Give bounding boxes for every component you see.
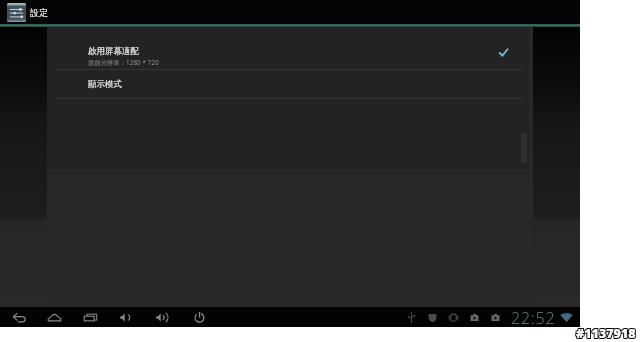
- staticText: 設定: [30, 7, 48, 18]
- staticText: #1137918: [576, 326, 636, 342]
- button[interactable]: 啟用屏幕適配: [47, 27, 529, 69]
- button[interactable]: Settings: [7, 3, 26, 22]
- staticText: #1137918: [576, 325, 636, 342]
- staticText: #1137918: [577, 325, 637, 342]
- button[interactable]: Volume down: [109, 307, 143, 327]
- staticText: 22:52: [511, 307, 556, 327]
- staticText: #1137918: [575, 326, 635, 342]
- button[interactable]: Back: [2, 307, 36, 327]
- staticText: 當前分辨率：1280 * 720: [88, 58, 159, 66]
- button[interactable]: Home: [37, 307, 71, 327]
- staticText: #1137918: [575, 324, 635, 341]
- staticText: 顯示模式: [88, 79, 122, 90]
- button[interactable]: Enabled: [496, 45, 510, 59]
- button[interactable]: Volume up: [145, 307, 179, 327]
- staticText: 啟用屏幕適配: [88, 46, 139, 57]
- staticText: #1137918: [577, 324, 637, 341]
- staticText: #1137918: [576, 324, 636, 341]
- staticText: #1137918: [575, 325, 635, 342]
- button[interactable]: 顯示模式: [47, 70, 529, 98]
- staticText: #1137918: [577, 326, 637, 342]
- button[interactable]: Power: [182, 307, 216, 327]
- button[interactable]: Recent apps: [73, 307, 107, 327]
